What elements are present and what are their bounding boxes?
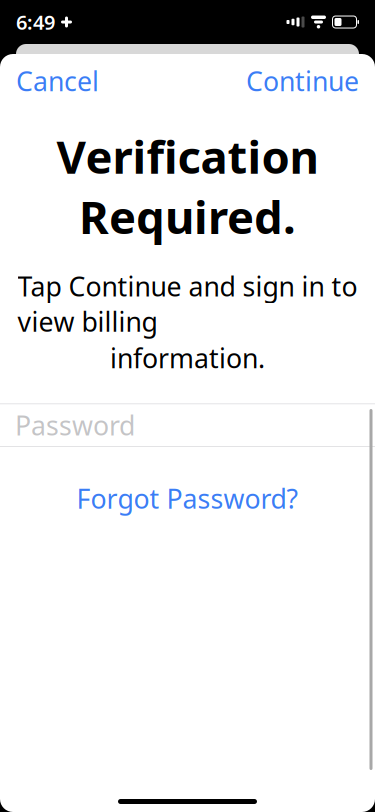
button[interactable]: Cancel: [0, 53, 115, 109]
button[interactable]: Continue: [230, 53, 375, 109]
staticText: Cancel: [16, 63, 99, 99]
staticText: Required.: [79, 186, 296, 246]
staticText: Verification: [56, 126, 318, 186]
staticText: Tap Continue and sign in to view billing: [17, 268, 357, 339]
staticText: information.: [110, 340, 265, 376]
staticText: Forgot Password?: [76, 481, 298, 516]
staticText: Password: [15, 407, 135, 443]
staticText: 6:49: [16, 9, 55, 35]
button[interactable]: Forgot Password?: [0, 473, 375, 524]
staticText: Continue: [246, 63, 359, 99]
